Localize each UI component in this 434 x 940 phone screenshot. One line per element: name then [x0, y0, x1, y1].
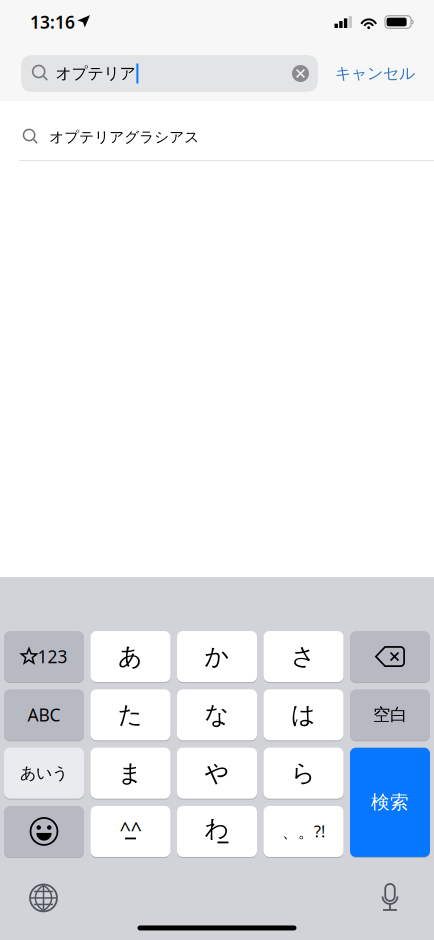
staticText: 13:16 — [30, 10, 75, 33]
staticText: な — [204, 700, 229, 730]
staticText: 、。?! — [282, 821, 325, 842]
button[interactable]: ABC — [4, 689, 84, 740]
button[interactable]: オプテリアグラシアス — [0, 101, 434, 161]
button[interactable]: オプテリア — [21, 55, 318, 92]
button[interactable]: か — [177, 631, 257, 682]
staticText: 検索 — [371, 791, 409, 814]
staticText: ま — [118, 758, 143, 788]
button[interactable]: や — [177, 748, 257, 799]
staticText: ABC — [27, 703, 60, 726]
button[interactable]: あいう — [4, 748, 84, 799]
staticText: ら — [291, 758, 316, 788]
button[interactable]: Dictation — [370, 874, 410, 922]
button[interactable]: 検索 — [350, 748, 430, 857]
button[interactable]: は — [263, 689, 343, 740]
button[interactable]: ^^ — [90, 806, 170, 857]
staticText: は — [291, 700, 316, 730]
staticText: や — [204, 758, 229, 788]
button[interactable]: わ — [177, 806, 257, 857]
button[interactable]: あ — [90, 631, 170, 682]
button[interactable]: な — [177, 689, 257, 740]
button[interactable]: ま — [90, 748, 170, 799]
staticText: キャンセル — [335, 64, 415, 83]
button[interactable]: キャンセル — [335, 56, 415, 91]
button[interactable]: Emoji — [4, 806, 84, 857]
button[interactable]: Next keyboard — [21, 875, 66, 920]
staticText: オプテリアグラシアス — [49, 128, 199, 146]
staticText: か — [204, 642, 229, 671]
button[interactable]: Delete — [350, 631, 430, 682]
staticText: さ — [291, 642, 316, 671]
staticText: た — [118, 700, 143, 730]
button[interactable]: た — [90, 689, 170, 740]
button[interactable]: ら — [263, 748, 343, 799]
button[interactable]: 空白 — [350, 689, 430, 740]
button[interactable]: 123 — [4, 631, 84, 682]
staticText: あ — [118, 642, 143, 671]
staticText: 123 — [37, 645, 67, 668]
staticText: ^^ — [119, 815, 141, 842]
button[interactable]: 、。?! — [263, 806, 343, 857]
staticText: あいう — [20, 763, 68, 783]
staticText: わ — [204, 814, 229, 843]
staticText: 空白 — [373, 704, 407, 725]
button[interactable]: さ — [263, 631, 343, 682]
staticText: オプテリア — [55, 64, 135, 83]
